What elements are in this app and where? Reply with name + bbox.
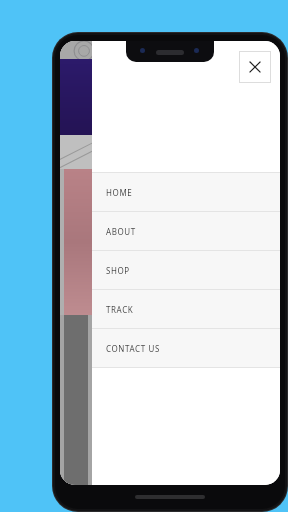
button[interactable]: ABOUT <box>92 212 280 250</box>
staticText: HOME <box>106 187 133 198</box>
button[interactable]: SHOP <box>92 251 280 289</box>
staticText: TRACK <box>106 304 134 315</box>
button[interactable]: Close menu <box>239 51 271 83</box>
staticText: ABOUT <box>106 226 136 237</box>
staticText: SHOP <box>106 265 130 276</box>
staticText: CONTACT US <box>106 343 160 354</box>
button[interactable]: HOME <box>92 173 280 211</box>
button[interactable]: TRACK <box>92 290 280 328</box>
button[interactable]: CONTACT US <box>92 329 280 367</box>
